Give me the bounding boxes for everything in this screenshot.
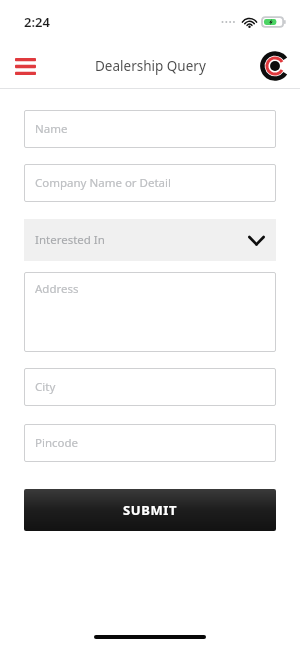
- staticText: Pincode: [35, 435, 79, 451]
- button[interactable]: SUBMIT: [24, 489, 276, 531]
- button[interactable]: Company Name or Detail: [24, 164, 276, 202]
- staticText: Interested In: [35, 232, 105, 248]
- staticText: City: [35, 379, 56, 395]
- staticText: Company Name or Detail: [35, 175, 171, 191]
- button[interactable]: City: [24, 368, 276, 406]
- button[interactable]: Name: [24, 110, 276, 148]
- staticText: Address: [35, 281, 79, 297]
- button[interactable]: Pincode: [24, 424, 276, 462]
- button[interactable]: Menu: [8, 49, 42, 83]
- staticText: 2:24: [24, 13, 50, 31]
- staticText: SUBMIT: [123, 501, 178, 519]
- staticText: Name: [35, 121, 68, 137]
- button[interactable]: Interested In: [24, 219, 276, 261]
- staticText: Dealership Query: [95, 57, 206, 75]
- button[interactable]: Address: [24, 272, 276, 352]
- button[interactable]: Logo: [258, 49, 292, 83]
